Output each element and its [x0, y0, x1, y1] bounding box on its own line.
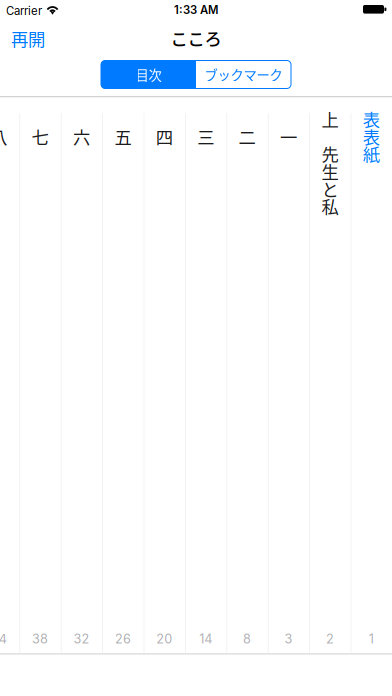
button[interactable]: 再開: [0, 22, 57, 54]
button[interactable]: 六、32ページ: [61, 97, 102, 655]
button[interactable]: 四、20ページ: [144, 97, 185, 655]
staticText: 八: [0, 124, 7, 149]
staticText: 私: [321, 193, 338, 219]
button[interactable]: ブックマーク: [196, 60, 291, 88]
staticText: 生: [321, 159, 338, 184]
button[interactable]: 七、38ページ: [19, 97, 61, 655]
staticText: 上: [321, 106, 338, 132]
button[interactable]: 五、26ページ: [102, 97, 144, 655]
button[interactable]: 二、8ページ: [226, 97, 268, 655]
staticText: 一: [280, 124, 297, 149]
staticText: 五: [114, 124, 131, 149]
staticText: 二: [239, 124, 256, 149]
button[interactable]: 八、44ページ: [0, 97, 19, 655]
staticText: と: [321, 176, 338, 201]
staticText: 再開: [11, 26, 45, 51]
staticText: 1:33 AM: [174, 3, 218, 17]
staticText: 先: [321, 141, 338, 166]
staticText: 1: [369, 631, 374, 647]
button[interactable]: 三、14ページ: [185, 97, 226, 655]
staticText: 14: [199, 631, 212, 647]
button[interactable]: 上 先生と私、2ページ: [309, 97, 351, 655]
staticText: 44: [0, 631, 7, 647]
staticText: 38: [32, 631, 48, 647]
button[interactable]: 一、3ページ: [268, 97, 309, 655]
staticText: 紙: [363, 141, 380, 166]
button[interactable]: 目次: [101, 60, 196, 88]
staticText: 六: [73, 124, 90, 149]
button[interactable]: 表表紙、1ページ: [351, 97, 392, 655]
staticText: 目次: [135, 65, 161, 84]
staticText: こころ: [170, 25, 221, 51]
staticText: 26: [115, 631, 131, 647]
staticText: ブックマーク: [204, 65, 282, 84]
staticText: 20: [156, 631, 172, 647]
staticText: 8: [243, 631, 251, 647]
staticText: 32: [73, 631, 89, 647]
staticText: 表: [363, 106, 380, 132]
staticText: 表: [363, 124, 380, 149]
staticText: Carrier: [6, 4, 42, 18]
staticText: 3: [284, 631, 292, 647]
staticText: 四: [156, 124, 173, 149]
staticText: 七: [32, 124, 49, 149]
staticText: 2: [326, 631, 334, 647]
staticText: 三: [197, 124, 214, 149]
